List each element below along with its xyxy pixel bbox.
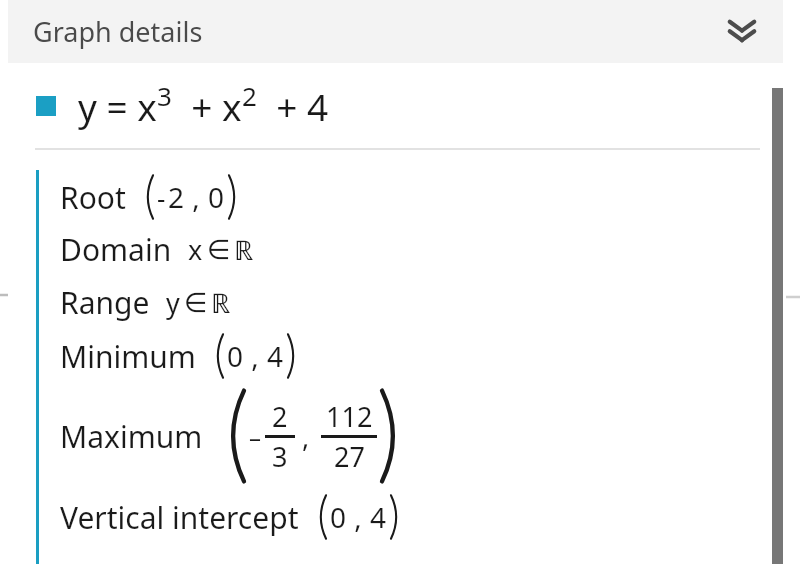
staticText: + x: [172, 81, 242, 131]
staticText: 0: [227, 337, 244, 375]
staticText: ,: [295, 418, 317, 455]
staticText: Root: [60, 177, 126, 218]
staticText: 2: [168, 178, 185, 216]
staticText: ∈: [207, 234, 231, 265]
staticText: 3: [272, 438, 288, 475]
staticText: ,: [347, 498, 370, 536]
staticText: Minimum: [60, 336, 196, 377]
staticText: ,: [185, 178, 208, 216]
button[interactable]: Minimum: [60, 333, 299, 379]
staticText: Range: [60, 282, 150, 323]
staticText: y: [166, 284, 180, 321]
button[interactable]: Root: [60, 174, 240, 220]
button[interactable]: Maximum: [60, 388, 405, 484]
staticText: Maximum: [60, 416, 203, 457]
staticText: 0: [208, 178, 225, 216]
staticText: 3: [157, 78, 172, 113]
staticText: 27: [334, 438, 365, 475]
staticText: Domain: [60, 229, 172, 270]
staticText: + 4: [257, 81, 329, 131]
button[interactable]: y = x: [36, 81, 329, 131]
staticText: ∈: [184, 287, 208, 318]
staticText: 0: [330, 498, 347, 536]
staticText: x: [188, 231, 203, 268]
staticText: ℝ: [211, 284, 231, 321]
button[interactable]: Vertical intercept: [60, 494, 402, 540]
staticText: 4: [267, 337, 284, 375]
staticText: ℝ: [234, 231, 254, 268]
button[interactable]: Collapse graph details: [715, 5, 769, 59]
staticText: 2: [242, 78, 257, 113]
staticText: -: [157, 180, 166, 215]
button[interactable]: Domain: [60, 229, 254, 270]
staticText: 4: [370, 498, 387, 536]
staticText: Graph details: [33, 13, 203, 50]
staticText: y = x: [78, 81, 157, 131]
staticText: 112: [326, 398, 373, 435]
staticText: –: [249, 420, 261, 453]
button[interactable]: Range: [60, 282, 231, 323]
staticText: Vertical intercept: [60, 497, 299, 538]
staticText: ,: [244, 337, 267, 375]
staticText: 2: [272, 398, 288, 435]
